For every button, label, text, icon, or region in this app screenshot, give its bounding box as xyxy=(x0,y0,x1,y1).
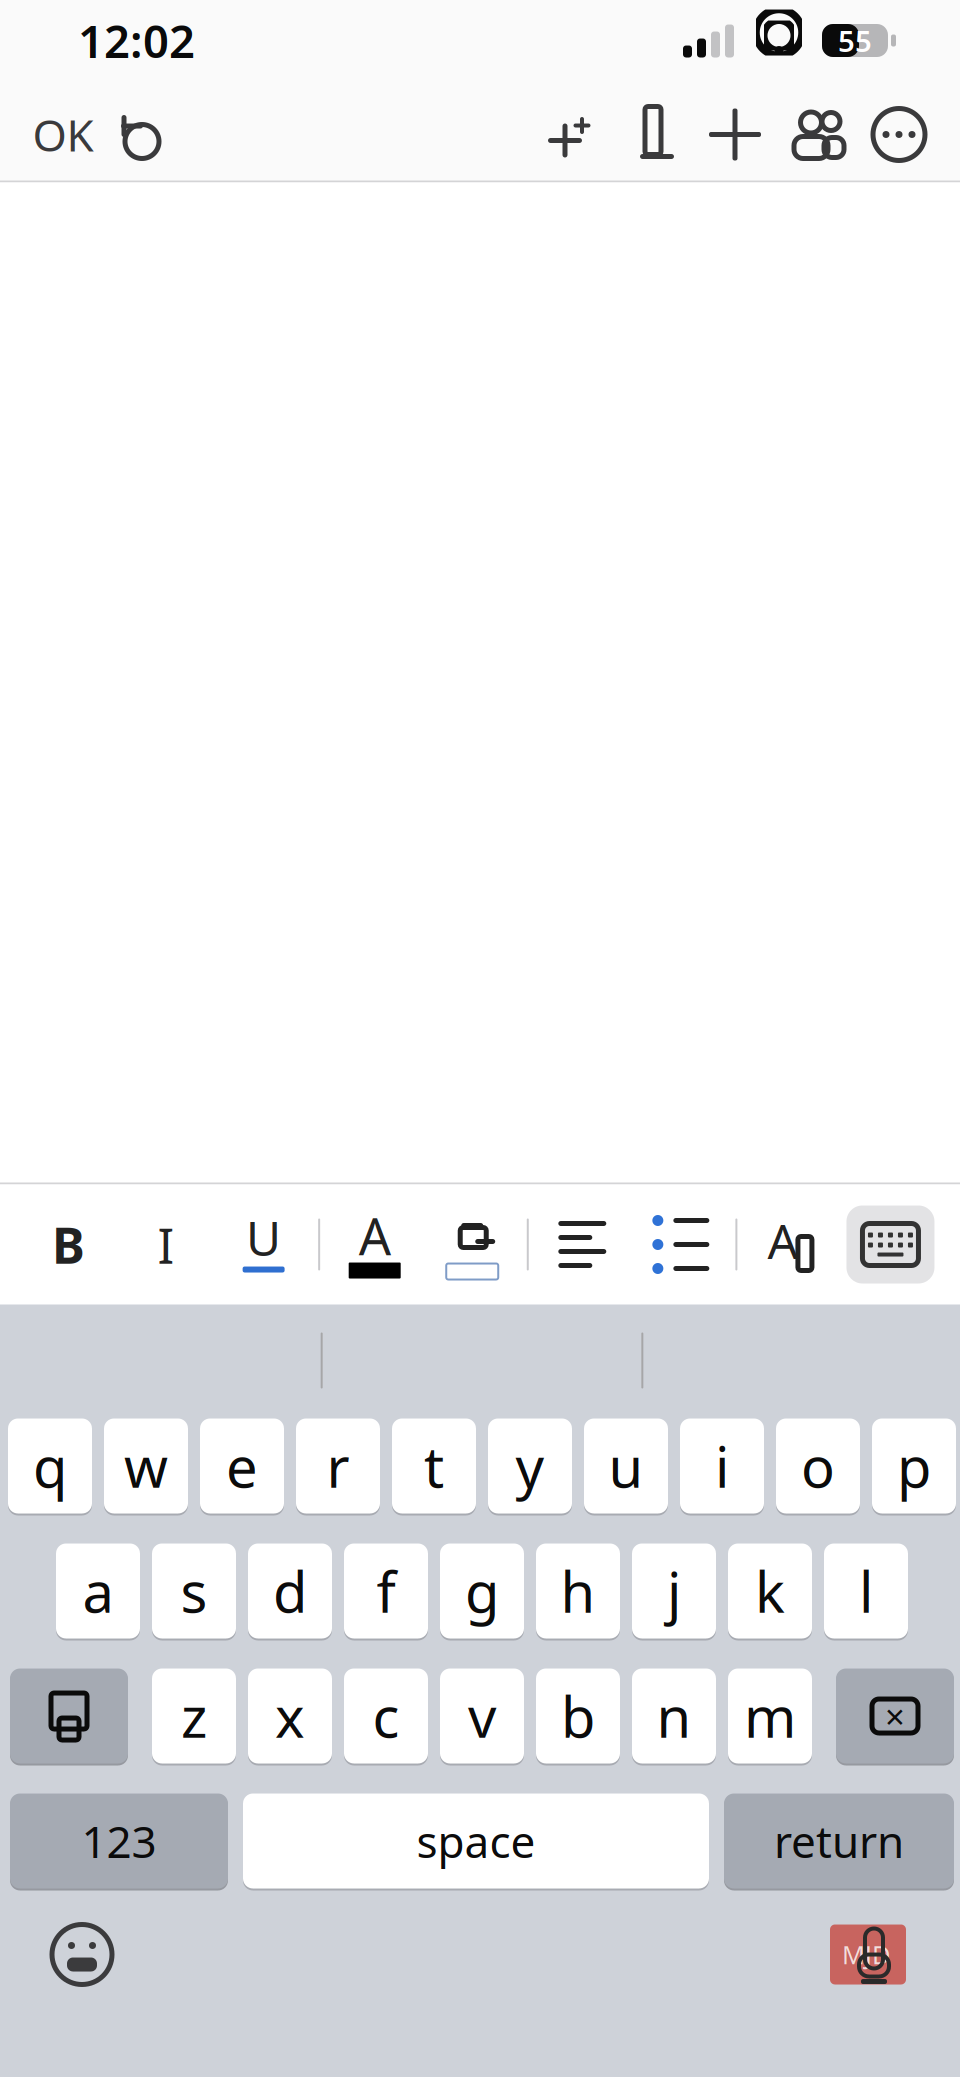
staticText: u xyxy=(608,1429,643,1503)
staticText: a xyxy=(82,1554,113,1628)
staticText: h xyxy=(560,1554,595,1628)
button[interactable]: z xyxy=(152,1666,236,1765)
button[interactable]: Align xyxy=(540,1196,626,1292)
button[interactable]: o xyxy=(776,1416,860,1515)
button[interactable]: c xyxy=(344,1666,428,1765)
staticText: d xyxy=(273,1554,307,1628)
button[interactable]: More options xyxy=(858,88,940,180)
button[interactable]: q xyxy=(8,1416,92,1515)
button[interactable]: OK xyxy=(24,88,102,180)
staticText: U xyxy=(246,1206,281,1269)
button[interactable]: u xyxy=(584,1416,668,1515)
staticText: k xyxy=(755,1554,785,1628)
staticText: q xyxy=(33,1429,67,1503)
button[interactable]: p xyxy=(872,1416,956,1515)
button[interactable]: Highlight xyxy=(429,1196,515,1292)
button[interactable]: Delete xyxy=(836,1666,954,1765)
staticText: t xyxy=(424,1429,444,1503)
staticText: c xyxy=(372,1679,399,1753)
button[interactable]: s xyxy=(152,1541,236,1640)
button[interactable]: Text color xyxy=(332,1196,418,1292)
staticText: A xyxy=(767,1209,798,1272)
button[interactable]: m xyxy=(728,1666,812,1765)
button[interactable]: 123 xyxy=(10,1791,228,1890)
button[interactable]: b xyxy=(536,1666,620,1765)
button[interactable]: h xyxy=(536,1541,620,1640)
staticText: s xyxy=(180,1554,207,1628)
button[interactable]: v xyxy=(440,1666,524,1765)
staticText: 12:02 xyxy=(78,10,195,71)
button[interactable]: n xyxy=(632,1666,716,1765)
button[interactable]: l xyxy=(824,1541,908,1640)
button[interactable]: Share with people xyxy=(776,88,858,180)
button[interactable]: y xyxy=(488,1416,572,1515)
staticText: x xyxy=(275,1679,305,1753)
staticText: p xyxy=(897,1429,931,1503)
staticText: 123 xyxy=(81,1812,156,1870)
staticText: z xyxy=(181,1679,207,1753)
staticText: I xyxy=(158,1212,175,1277)
staticText: r xyxy=(326,1429,349,1503)
staticText: l xyxy=(859,1554,873,1628)
staticText: j xyxy=(667,1554,681,1628)
staticText: A xyxy=(359,1202,391,1269)
button[interactable]: a xyxy=(56,1541,140,1640)
button[interactable]: Insert xyxy=(694,88,776,180)
staticText: return xyxy=(774,1812,904,1870)
button[interactable]: I xyxy=(123,1196,209,1292)
staticText: m xyxy=(744,1679,796,1753)
staticText: i xyxy=(715,1429,729,1503)
staticText: v xyxy=(468,1679,496,1753)
staticText: 55 xyxy=(838,21,872,60)
staticText: w xyxy=(124,1429,168,1503)
button[interactable]: return xyxy=(724,1791,954,1890)
button[interactable]: g xyxy=(440,1541,524,1640)
staticText: space xyxy=(416,1812,535,1870)
staticText: e xyxy=(226,1429,258,1503)
button[interactable]: Dictate xyxy=(814,1908,922,2000)
button[interactable]: k xyxy=(728,1541,812,1640)
button[interactable]: Emoji xyxy=(36,1908,128,2000)
button[interactable]: Underline xyxy=(221,1196,307,1292)
staticText: × xyxy=(885,1693,905,1739)
staticText: f xyxy=(376,1554,395,1628)
staticText: MJD xyxy=(842,1938,890,1971)
button[interactable]: AI assist xyxy=(530,88,612,180)
button[interactable]: Shift xyxy=(10,1666,128,1765)
button[interactable]: space xyxy=(243,1791,709,1890)
staticText: y xyxy=(515,1429,544,1503)
button[interactable]: Draw xyxy=(612,88,694,180)
button[interactable]: w xyxy=(104,1416,188,1515)
button[interactable]: Text style xyxy=(749,1196,835,1292)
button[interactable]: j xyxy=(632,1541,716,1640)
staticText: n xyxy=(656,1679,691,1753)
button[interactable]: x xyxy=(248,1666,332,1765)
button[interactable]: Undo xyxy=(102,88,176,180)
button[interactable]: d xyxy=(248,1541,332,1640)
button[interactable]: t xyxy=(392,1416,476,1515)
button[interactable]: B xyxy=(25,1196,111,1292)
button[interactable]: i xyxy=(680,1416,764,1515)
button[interactable]: f xyxy=(344,1541,428,1640)
button[interactable]: Keyboard xyxy=(846,1205,934,1283)
staticText: g xyxy=(465,1554,499,1628)
button[interactable]: r xyxy=(296,1416,380,1515)
staticText: B xyxy=(52,1212,85,1277)
button[interactable]: e xyxy=(200,1416,284,1515)
staticText: OK xyxy=(32,105,93,164)
staticText: o xyxy=(801,1429,835,1503)
button[interactable]: Bulleted list xyxy=(638,1196,724,1292)
staticText: b xyxy=(561,1679,595,1753)
